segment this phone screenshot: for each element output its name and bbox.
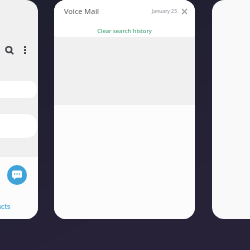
staticText: Clear search history (97, 27, 152, 35)
button[interactable]: Clear search history (54, 23, 195, 37)
staticText: January 23 (152, 8, 177, 15)
button[interactable]: Search (2, 43, 16, 57)
button[interactable]: Voice Mail (54, 0, 195, 219)
button[interactable]: Start chat (7, 165, 27, 185)
staticText: Voice Mail (64, 6, 99, 16)
button[interactable]: More options (18, 43, 32, 57)
staticText: Contacts (0, 201, 11, 211)
button[interactable] (212, 0, 250, 219)
button[interactable]: Remove (180, 7, 188, 15)
button[interactable]: Search (0, 0, 38, 219)
